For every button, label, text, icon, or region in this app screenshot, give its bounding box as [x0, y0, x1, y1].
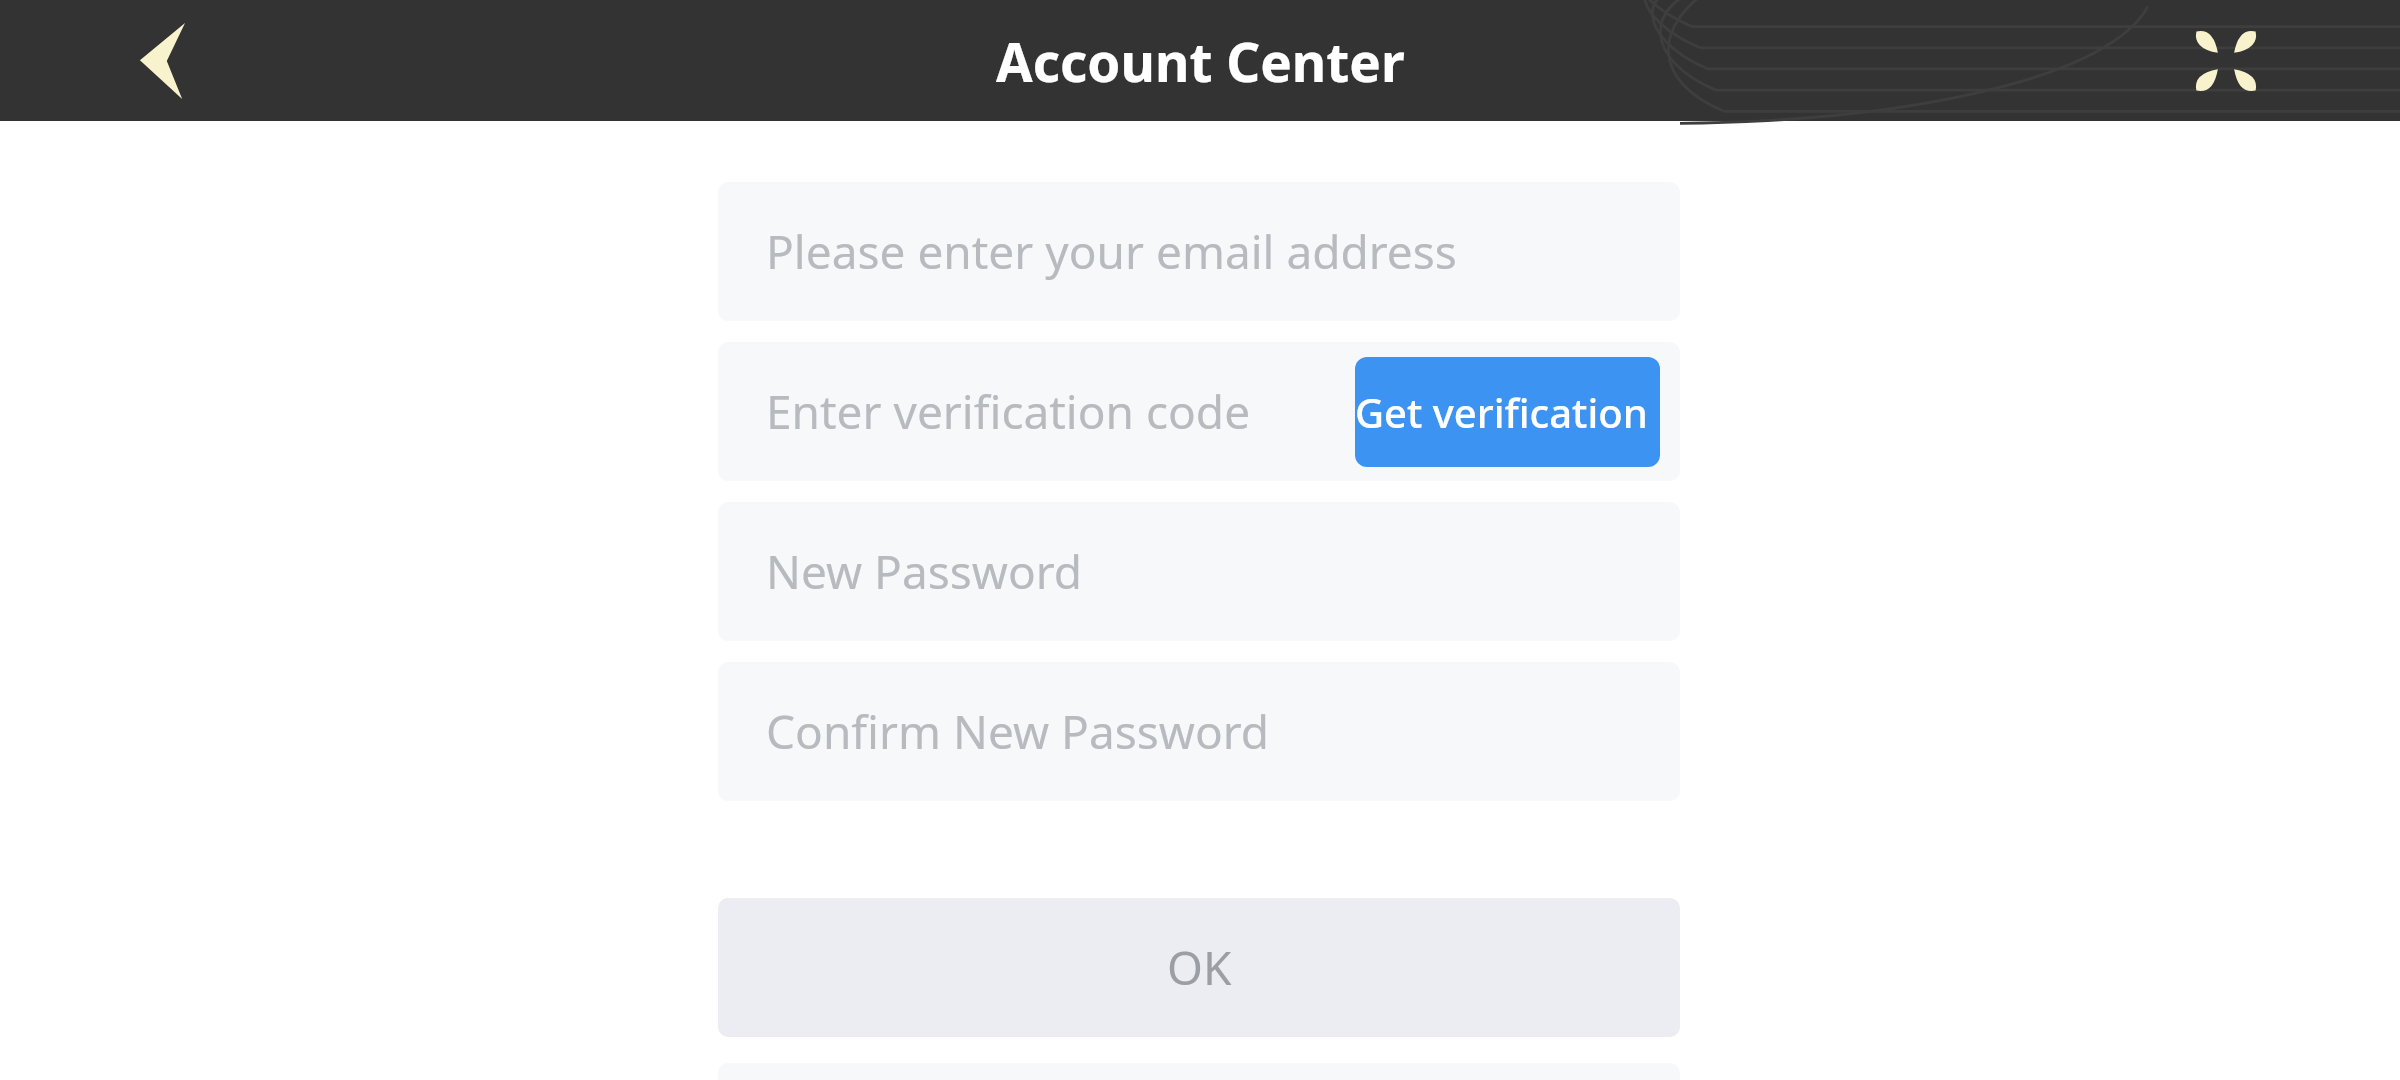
button[interactable]: New Password [718, 502, 1680, 641]
staticText: Please enter your email address [766, 220, 1457, 283]
button[interactable]: Please enter your email address [718, 182, 1680, 321]
button[interactable]: OK [718, 898, 1680, 1037]
button[interactable]: Get verification code [1355, 357, 1660, 467]
staticText: Get verification code [1355, 385, 1660, 439]
button[interactable]: Confirm New Password [718, 662, 1680, 801]
staticText: Confirm New Password [766, 700, 1270, 763]
staticText: OK [1167, 936, 1232, 999]
staticText: Enter verification code [766, 380, 1251, 443]
button[interactable]: Back [110, 9, 214, 113]
button[interactable]: Enter verification code [718, 342, 1680, 481]
staticText: Account Center [996, 25, 1405, 97]
button[interactable]: Menu [2174, 9, 2278, 113]
staticText: New Password [766, 540, 1083, 603]
